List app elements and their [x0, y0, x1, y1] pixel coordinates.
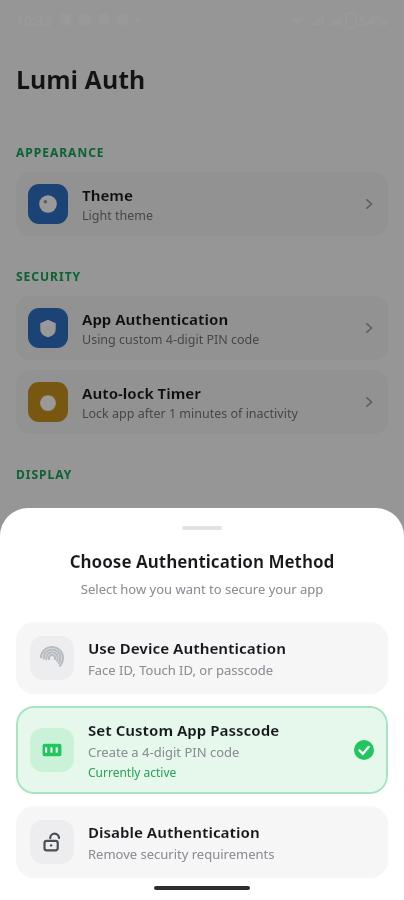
staticText: App Authentication: [82, 309, 229, 329]
staticText: APPEARANCE: [16, 144, 105, 160]
staticText: Remove security requirements: [88, 845, 275, 863]
button[interactable]: Set Custom App Passcode: [16, 706, 388, 794]
staticText: Use Device Authentication: [88, 638, 286, 658]
button[interactable]: Disable Authentication: [16, 806, 388, 878]
staticText: Face ID, Touch ID, or passcode: [88, 661, 274, 679]
button[interactable]: Use Device Authentication: [16, 622, 388, 694]
staticText: Select how you want to secure your app: [0, 580, 404, 598]
staticText: Currently active: [88, 764, 177, 780]
staticText: DISPLAY: [16, 466, 73, 482]
staticText: Lumi Auth: [16, 62, 146, 96]
staticText: Lock app after 1 minutes of inactivity: [82, 405, 298, 422]
button[interactable]: Theme: [16, 172, 388, 236]
staticText: SECURITY: [16, 268, 82, 284]
staticText: Disable Authentication: [88, 822, 260, 842]
staticText: Light theme: [82, 207, 153, 224]
staticText: Create a 4-digit PIN code: [88, 743, 240, 761]
staticText: Auto-lock Timer: [82, 383, 202, 403]
staticText: Choose Authentication Method: [0, 550, 404, 573]
button[interactable]: Auto-lock Timer: [16, 370, 388, 434]
staticText: Set Custom App Passcode: [88, 720, 280, 740]
staticText: Theme: [82, 185, 133, 205]
button[interactable]: App Authentication: [16, 296, 388, 360]
other: Selected: [354, 740, 374, 760]
staticText: Using custom 4-digit PIN code: [82, 331, 260, 348]
